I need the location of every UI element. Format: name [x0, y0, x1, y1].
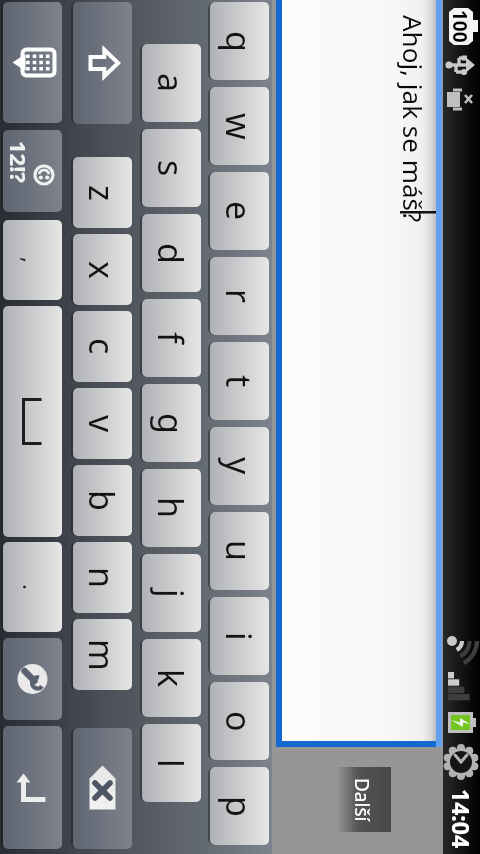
- staticText: z: [79, 185, 125, 201]
- button[interactable]: Space: [3, 306, 62, 537]
- staticText: .: [17, 584, 47, 590]
- staticText: Ahoj, jak se máš?: [396, 15, 431, 223]
- staticText: t: [216, 375, 262, 388]
- staticText: x: [79, 261, 125, 279]
- button[interactable]: ,: [3, 220, 62, 300]
- button[interactable]: u: [210, 512, 269, 590]
- staticText: s: [148, 160, 194, 177]
- button[interactable]: z: [73, 157, 132, 228]
- button[interactable]: Hide keyboard: [3, 2, 62, 123]
- button[interactable]: f: [142, 299, 201, 377]
- button[interactable]: o: [210, 682, 269, 760]
- button[interactable]: Symbols: [3, 130, 62, 212]
- staticText: h: [148, 497, 194, 519]
- button[interactable]: a: [142, 44, 201, 122]
- staticText: m: [79, 639, 125, 671]
- staticText: Další: [349, 778, 375, 822]
- staticText: o: [216, 711, 262, 732]
- button[interactable]: Shift: [73, 2, 132, 124]
- button[interactable]: b: [73, 465, 132, 536]
- button[interactable]: r: [210, 257, 269, 335]
- staticText: d: [148, 243, 194, 264]
- button[interactable]: w: [210, 87, 269, 165]
- staticText: w: [216, 113, 262, 140]
- button[interactable]: g: [142, 384, 201, 462]
- button[interactable]: q: [210, 2, 269, 80]
- staticText: j: [148, 589, 194, 598]
- staticText: b: [79, 490, 125, 511]
- button[interactable]: Ahoj, jak se máš?: [282, 0, 436, 741]
- staticText: k: [148, 669, 194, 688]
- button[interactable]: l: [142, 724, 201, 802]
- staticText: n: [79, 567, 125, 589]
- button[interactable]: Settings: [3, 638, 62, 720]
- staticText: i: [216, 632, 262, 641]
- staticText: y: [216, 457, 262, 475]
- button[interactable]: t: [210, 342, 269, 420]
- staticText: r: [216, 289, 262, 304]
- staticText: q: [216, 31, 262, 52]
- button[interactable]: m: [73, 619, 132, 690]
- staticText: ,: [17, 257, 47, 263]
- button[interactable]: s: [142, 129, 201, 207]
- button[interactable]: e: [210, 172, 269, 250]
- button[interactable]: v: [73, 388, 132, 459]
- staticText: 12!?: [4, 141, 34, 183]
- button[interactable]: j: [142, 554, 201, 632]
- staticText: 14:04: [446, 789, 477, 849]
- staticText: 100: [449, 10, 473, 43]
- button[interactable]: Další: [334, 767, 391, 832]
- button[interactable]: p: [210, 767, 269, 845]
- button[interactable]: n: [73, 542, 132, 613]
- staticText: f: [148, 332, 194, 344]
- button[interactable]: Enter: [3, 726, 62, 849]
- staticText: l: [148, 759, 194, 768]
- button[interactable]: .: [3, 542, 62, 632]
- staticText: u: [216, 540, 262, 562]
- staticText: p: [216, 796, 262, 817]
- button[interactable]: k: [142, 639, 201, 717]
- button[interactable]: i: [210, 597, 269, 675]
- button[interactable]: y: [210, 427, 269, 505]
- staticText: v: [79, 415, 125, 433]
- staticText: a: [148, 73, 194, 93]
- staticText: c: [79, 338, 125, 355]
- staticText: g: [148, 413, 194, 434]
- button[interactable]: h: [142, 469, 201, 547]
- button[interactable]: d: [142, 214, 201, 292]
- button[interactable]: x: [73, 234, 132, 305]
- staticText: e: [216, 201, 262, 221]
- button[interactable]: Delete: [73, 728, 132, 849]
- button[interactable]: c: [73, 311, 132, 382]
